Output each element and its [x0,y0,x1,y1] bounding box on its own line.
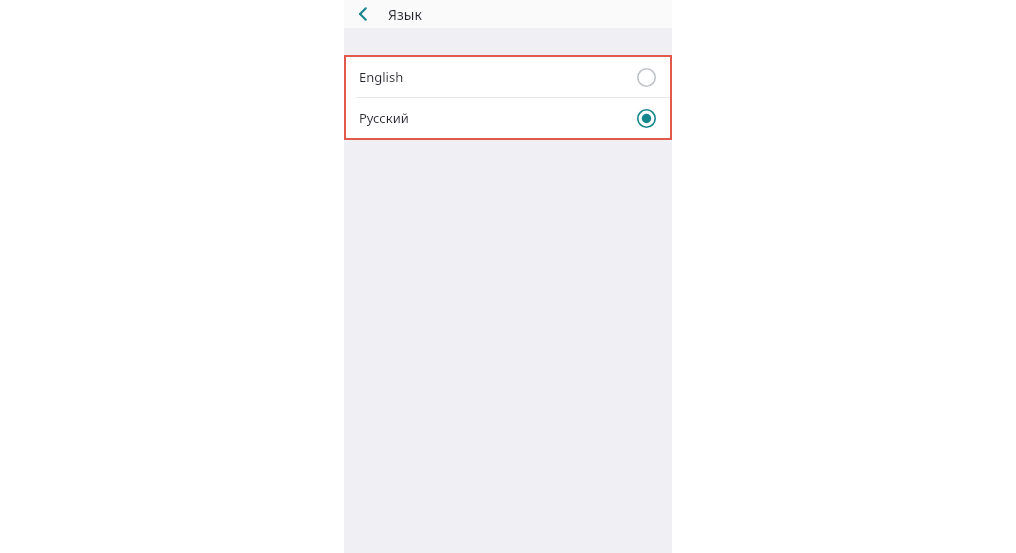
button[interactable]: English [346,57,670,97]
button[interactable]: Русский [346,98,670,138]
button[interactable]: Back [352,2,376,26]
staticText: English [359,68,637,86]
staticText: Русский [359,109,637,127]
staticText: Язык [388,5,422,24]
